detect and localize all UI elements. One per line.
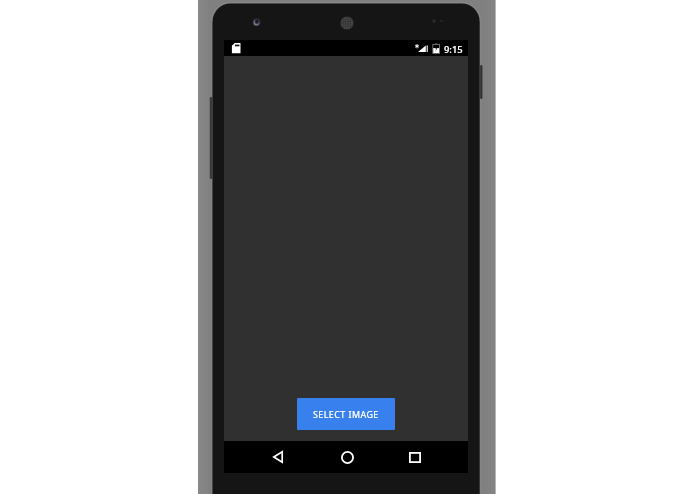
button[interactable]: Home: [330, 441, 364, 473]
staticText: SELECT IMAGE: [313, 408, 379, 420]
staticText: 9:15: [444, 43, 463, 56]
button[interactable]: Back: [261, 441, 295, 473]
button[interactable]: Recents: [398, 441, 432, 473]
button[interactable]: SELECT IMAGE: [297, 398, 395, 430]
